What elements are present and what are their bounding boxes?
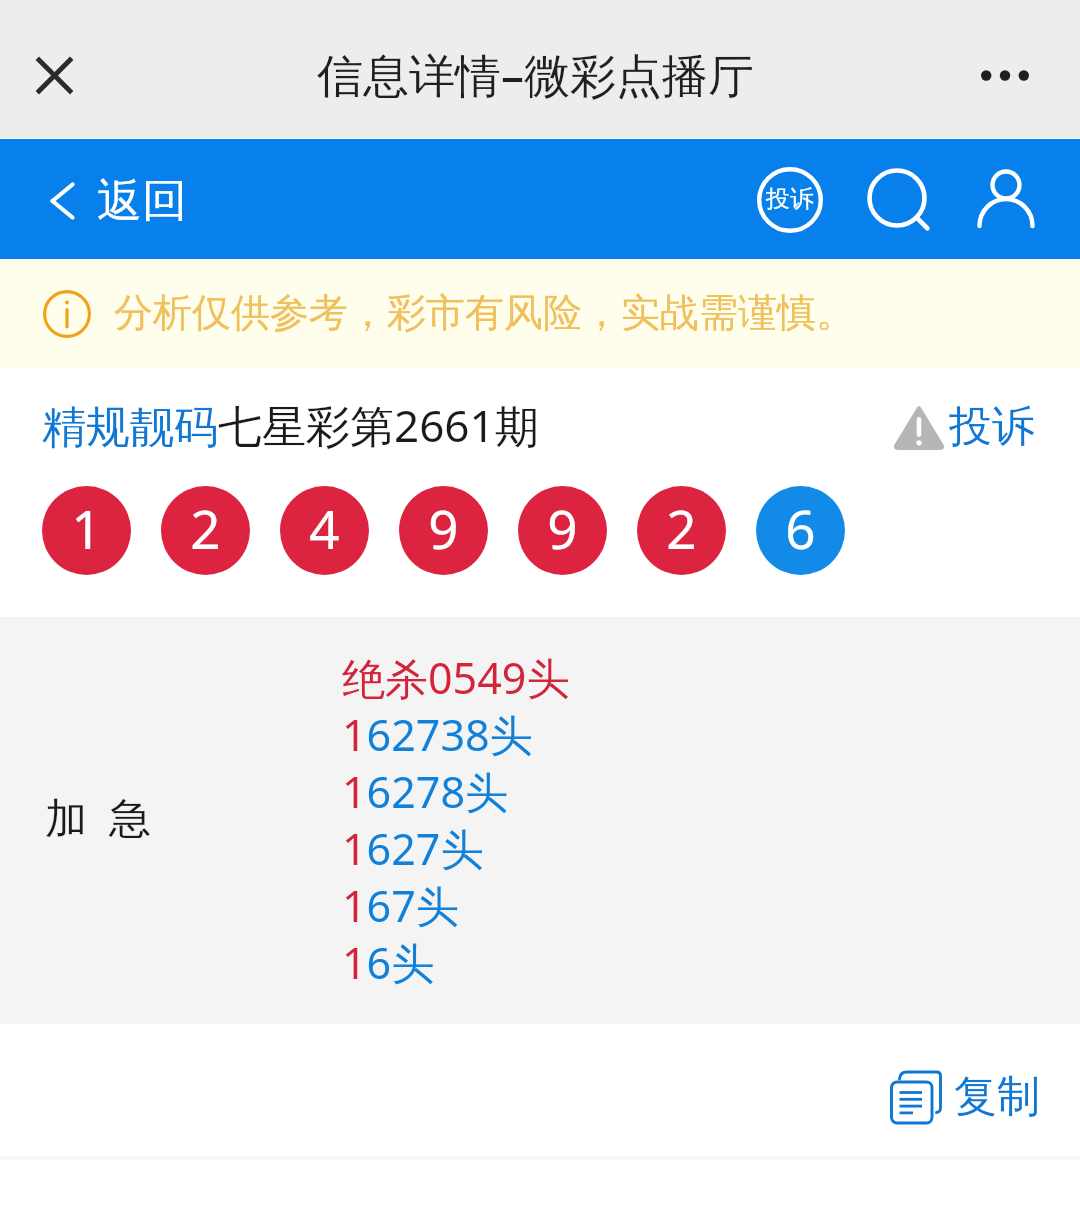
staticText: 1	[71, 492, 102, 564]
button[interactable]: Close	[16, 37, 93, 114]
button[interactable]: Profile	[968, 161, 1044, 237]
staticText: 绝杀0549头 162738头 16278头 1627头 167头 16头	[342, 648, 570, 992]
staticText: 2	[190, 492, 221, 564]
staticText: 分析仅供参考，彩市有风险，实战需谨慎。	[114, 288, 855, 337]
staticText: 投诉	[949, 400, 1035, 454]
staticText: 4	[309, 492, 340, 564]
button[interactable]: 投诉	[752, 162, 828, 238]
staticText: 9	[547, 492, 578, 564]
button[interactable]: More options	[967, 37, 1043, 113]
button[interactable]: 投诉	[888, 392, 1039, 462]
staticText: 返回	[97, 173, 187, 230]
staticText: 2	[666, 492, 697, 564]
staticText: 复制	[954, 1070, 1040, 1124]
staticText: 投诉	[766, 184, 814, 214]
button[interactable]: 返回	[41, 158, 197, 244]
staticText: 加 急	[45, 788, 151, 845]
button[interactable]: 复制	[887, 1052, 1044, 1130]
button[interactable]: Search	[859, 160, 935, 236]
staticText: 精规靓码七星彩第2661期	[42, 395, 539, 455]
staticText: 信息详情–微彩点播厅	[317, 43, 754, 106]
staticText: 6	[785, 492, 816, 564]
staticText: 9	[428, 492, 459, 564]
